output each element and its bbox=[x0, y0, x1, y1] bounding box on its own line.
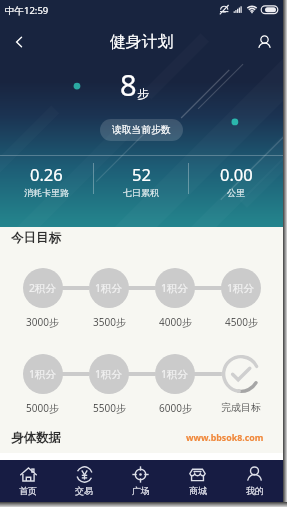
staticText: 3500步 bbox=[93, 315, 126, 329]
button[interactable]: 1积分 bbox=[23, 354, 63, 394]
staticText: 6000步 bbox=[159, 401, 192, 415]
staticText: 0.00 bbox=[220, 163, 253, 185]
button[interactable]: 2积分 bbox=[23, 268, 63, 308]
staticText: 交易 bbox=[75, 485, 93, 496]
staticText: 消耗卡里路 bbox=[24, 187, 69, 197]
button[interactable]: 首页 bbox=[0, 460, 56, 502]
button[interactable]: 1积分 bbox=[221, 268, 261, 308]
staticText: 商城 bbox=[189, 485, 207, 496]
staticText: www.bbsok8.com bbox=[186, 432, 264, 444]
staticText: 1积分 bbox=[95, 367, 123, 381]
staticText: 步 bbox=[137, 86, 149, 101]
staticText: 首页 bbox=[19, 485, 37, 496]
staticText: 2积分 bbox=[29, 281, 57, 295]
button[interactable]: Back bbox=[0, 23, 38, 61]
staticText: 今日目标 bbox=[11, 230, 61, 246]
staticText: 52 bbox=[132, 163, 151, 185]
staticText: 4500步 bbox=[225, 315, 258, 329]
button[interactable]: Profile bbox=[245, 23, 283, 61]
button[interactable]: 我的 bbox=[226, 460, 283, 502]
button[interactable]: 1积分 bbox=[89, 268, 129, 308]
staticText: 读取当前步数 bbox=[112, 124, 171, 136]
staticText: 1积分 bbox=[161, 281, 189, 295]
button[interactable]: 广场 bbox=[112, 460, 169, 502]
button[interactable]: 1积分 bbox=[89, 354, 129, 394]
staticText: 0.26 bbox=[30, 163, 63, 185]
staticText: 公里 bbox=[227, 187, 245, 197]
staticText: 1积分 bbox=[227, 281, 255, 295]
button[interactable]: 1积分 bbox=[155, 354, 195, 394]
staticText: 1积分 bbox=[29, 367, 57, 381]
staticText: 中午12:59 bbox=[5, 4, 49, 17]
button[interactable]: 完成目标 bbox=[221, 354, 261, 394]
button[interactable]: 1积分 bbox=[155, 268, 195, 308]
staticText: 5000步 bbox=[26, 401, 59, 415]
staticText: 我的 bbox=[246, 485, 264, 496]
staticText: 1积分 bbox=[95, 281, 123, 295]
staticText: 身体数据 bbox=[11, 430, 61, 446]
staticText: 完成目标 bbox=[221, 401, 261, 414]
button[interactable]: 交易 bbox=[56, 460, 112, 502]
staticText: 8 bbox=[120, 65, 137, 104]
button[interactable]: 商城 bbox=[169, 460, 226, 502]
staticText: 健身计划 bbox=[110, 32, 174, 52]
staticText: 5500步 bbox=[93, 401, 126, 415]
staticText: 3000步 bbox=[26, 315, 59, 329]
staticText: 1积分 bbox=[161, 367, 189, 381]
staticText: 七日累积 bbox=[123, 187, 159, 197]
button[interactable]: 读取当前步数 bbox=[100, 119, 183, 141]
staticText: 4000步 bbox=[159, 315, 192, 329]
staticText: 广场 bbox=[132, 485, 150, 496]
